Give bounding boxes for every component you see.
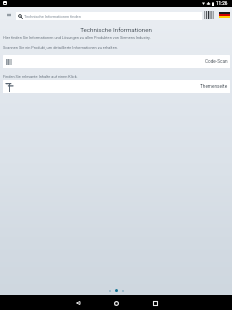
staticText: Finden Sie relevante Inhalte auf einen K… xyxy=(3,74,78,79)
staticText: Scannen Sie ein Produkt, um detaillierte… xyxy=(3,45,118,50)
staticText: Technische Informationen finden xyxy=(24,14,81,19)
staticText: 11:26 xyxy=(216,1,228,6)
button[interactable]: Scan code xyxy=(204,11,215,19)
button[interactable]: Back xyxy=(71,296,85,310)
staticText: Hier finden Sie Informationen und Lösung… xyxy=(3,35,151,40)
button[interactable]: Themenseite xyxy=(3,80,230,93)
staticText: Themenseite xyxy=(200,84,228,90)
button[interactable]: Recents xyxy=(148,296,162,310)
button[interactable]: Language xyxy=(219,12,230,18)
button[interactable]: Code-Scan xyxy=(3,55,230,68)
button[interactable]: Technische Informationen finden xyxy=(16,12,202,20)
button[interactable]: Home xyxy=(109,296,123,310)
staticText: Code-Scan xyxy=(205,59,228,65)
staticText: Technische Informationen xyxy=(0,26,232,33)
